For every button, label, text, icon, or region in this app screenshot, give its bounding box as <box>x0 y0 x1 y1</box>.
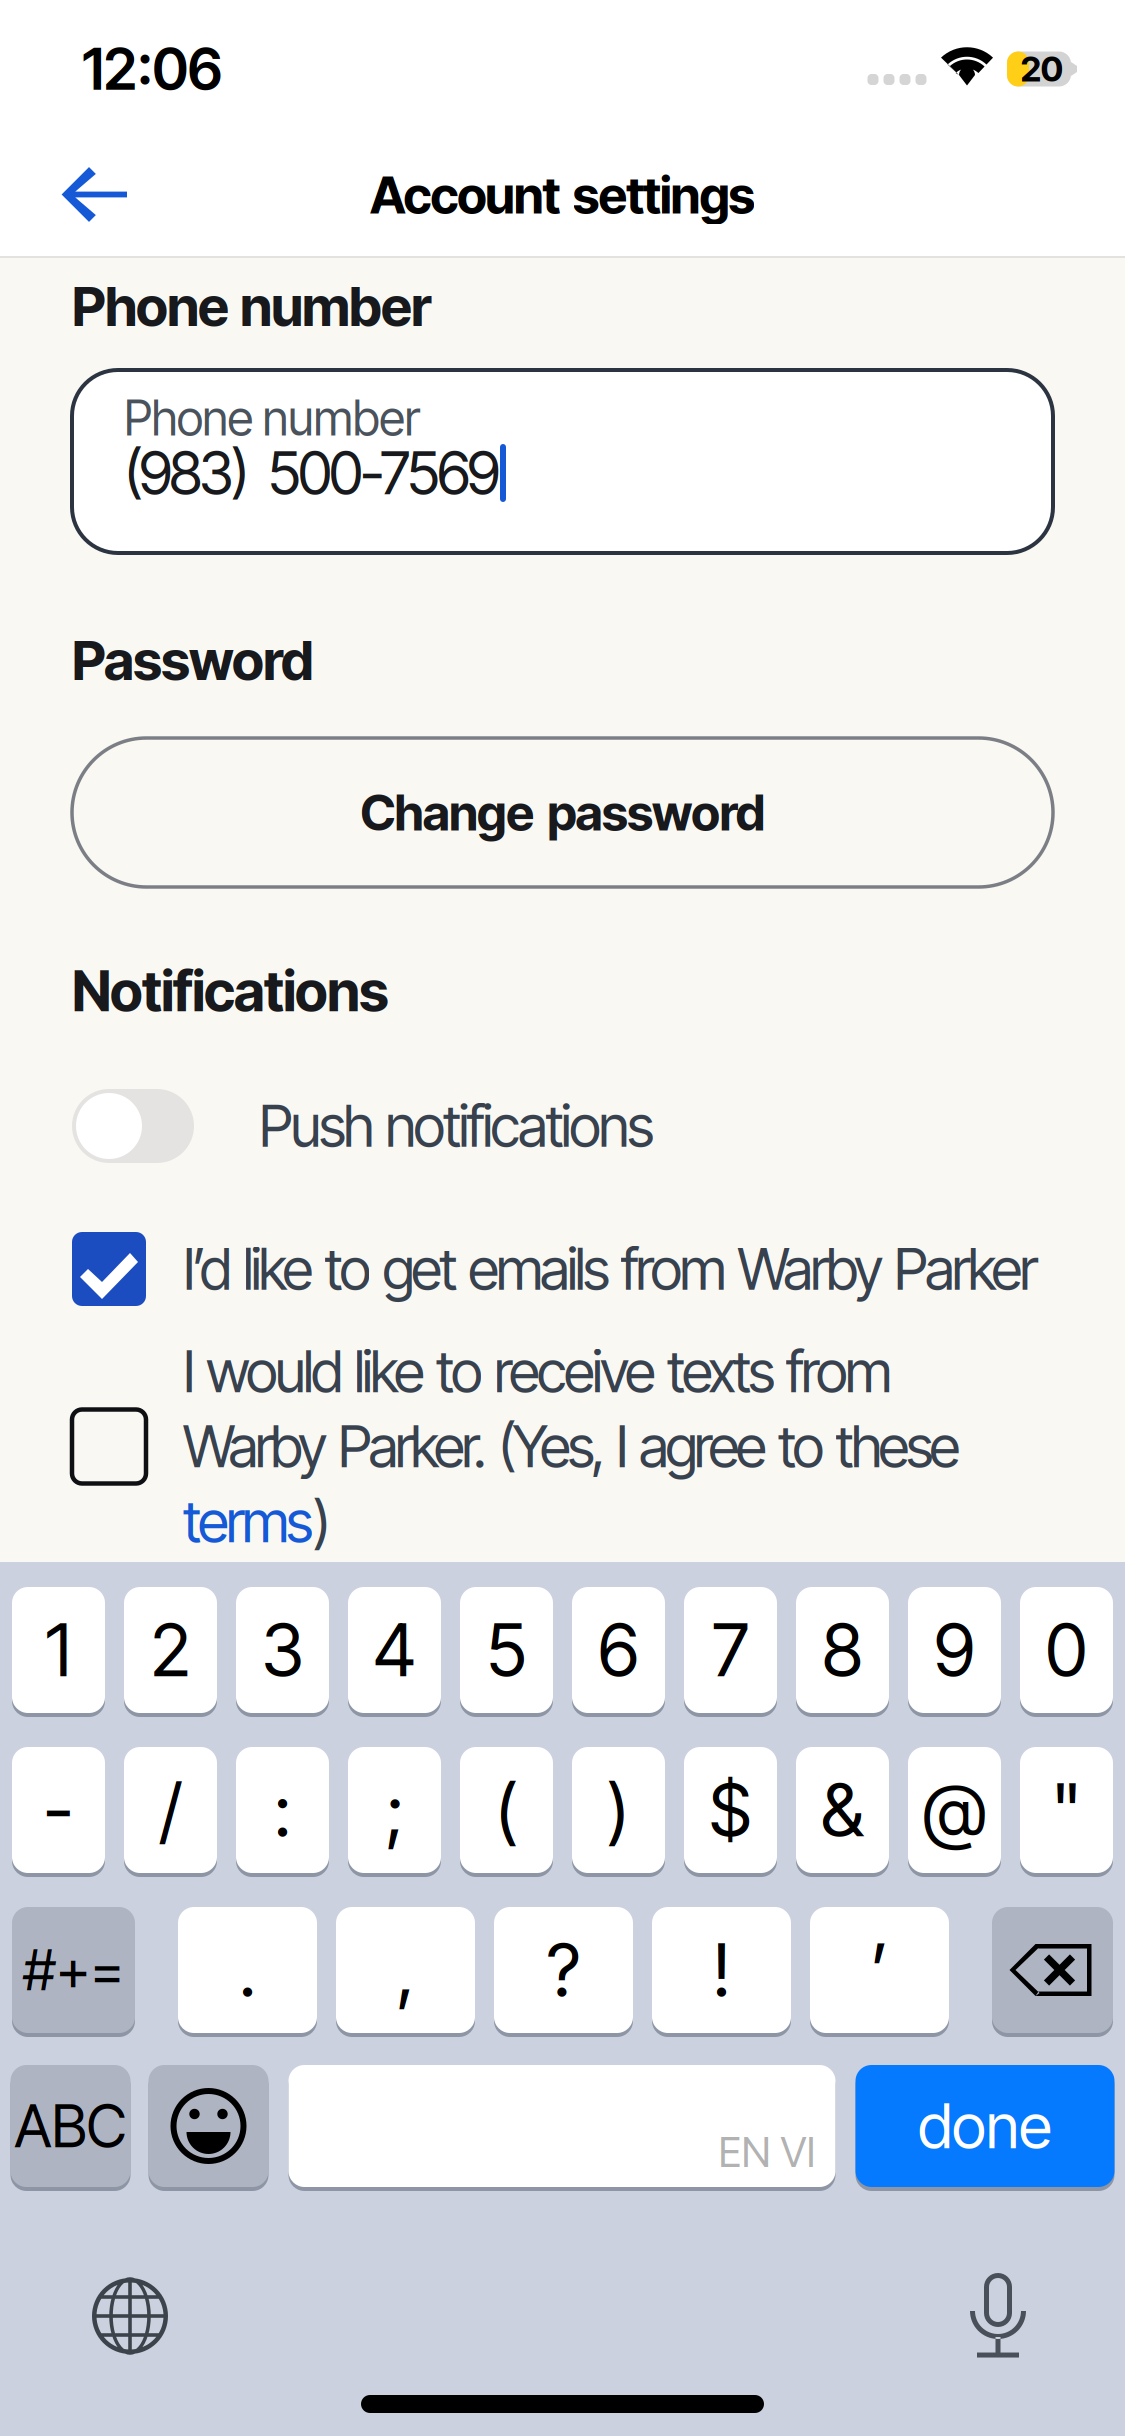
staticText: ) <box>313 1487 331 1556</box>
button[interactable]: ; <box>348 1747 441 1877</box>
staticText: I <box>616 1412 628 1481</box>
button[interactable]: ( <box>460 1747 553 1877</box>
staticText: ; <box>385 1766 403 1853</box>
button[interactable]: " <box>1020 1747 1113 1877</box>
button[interactable]: @ <box>908 1747 1001 1877</box>
button[interactable]: & <box>796 1747 889 1877</box>
button[interactable]: ) <box>572 1747 665 1877</box>
staticText: Change <box>360 783 534 842</box>
button[interactable]: ? <box>494 1907 633 2037</box>
staticText: (983) 500-7569 <box>124 437 500 508</box>
button[interactable]: space <box>288 2065 835 2191</box>
staticText: to <box>436 1337 483 1406</box>
staticText: 3 <box>261 1606 303 1693</box>
staticText: ! <box>712 1926 730 2013</box>
staticText: 7 <box>712 1606 749 1693</box>
staticText: 9 <box>934 1606 975 1693</box>
staticText: would <box>206 1337 343 1406</box>
staticText: Parker. <box>338 1412 487 1481</box>
button[interactable]: I’d <box>72 1232 1053 1306</box>
staticText: done <box>918 2089 1052 2163</box>
button[interactable]: 7 <box>684 1587 777 1717</box>
staticText: I <box>183 1337 195 1406</box>
staticText: " <box>1051 1766 1081 1853</box>
staticText: texts <box>667 1337 775 1406</box>
staticText: #+= <box>23 1936 124 2004</box>
staticText: , <box>396 1926 414 2013</box>
staticText: 12:06 <box>82 34 223 104</box>
button[interactable]: I <box>72 1334 1053 1559</box>
staticText: Account <box>370 164 561 226</box>
button[interactable]: 0 <box>1020 1587 1113 1717</box>
button[interactable]: done <box>855 2065 1114 2191</box>
staticText: - <box>43 1766 73 1853</box>
staticText: Warby <box>737 1234 883 1304</box>
button[interactable]: 4 <box>348 1587 441 1717</box>
staticText: agree <box>639 1412 767 1481</box>
button[interactable]: 9 <box>908 1587 1001 1717</box>
button[interactable]: . <box>178 1907 317 2037</box>
button[interactable]: 6 <box>572 1587 665 1717</box>
staticText: from <box>786 1337 892 1406</box>
button[interactable]: Dictation <box>953 2257 1043 2373</box>
button[interactable]: Push <box>72 1089 1053 1163</box>
staticText: EN VI <box>718 2127 815 2177</box>
staticText: : <box>274 1766 291 1853</box>
button[interactable]: 1 <box>12 1587 105 1717</box>
button[interactable]: $ <box>684 1747 777 1877</box>
button[interactable]: Delete <box>992 1907 1113 2037</box>
button[interactable]: 8 <box>796 1587 889 1717</box>
button[interactable]: ’ <box>810 1907 949 2037</box>
button[interactable]: - <box>12 1747 105 1877</box>
staticText: Notifications <box>72 957 389 1025</box>
staticText: I’d <box>183 1234 232 1304</box>
button[interactable]: Next keyboard <box>74 2260 182 2370</box>
staticText: emails <box>468 1234 610 1304</box>
staticText: / <box>159 1766 181 1853</box>
staticText: ’ <box>870 1926 888 2013</box>
staticText: 5 <box>486 1606 526 1693</box>
staticText: notifications <box>385 1091 654 1161</box>
staticText: 2 <box>150 1606 190 1693</box>
button[interactable]: 2 <box>124 1587 217 1717</box>
button[interactable]: : <box>236 1747 329 1877</box>
staticText: Warby <box>183 1412 327 1481</box>
staticText: ABC <box>14 2090 126 2161</box>
staticText: get <box>382 1234 457 1304</box>
staticText: Parker <box>894 1234 1038 1304</box>
staticText: Phone <box>124 389 254 447</box>
button[interactable]: Emoji <box>148 2065 268 2191</box>
staticText: . <box>239 1926 256 2013</box>
staticText: number <box>240 273 432 339</box>
button[interactable]: Back <box>0 132 185 257</box>
staticText: 4 <box>373 1606 416 1693</box>
button[interactable]: ABC <box>10 2065 130 2191</box>
staticText: to <box>324 1234 371 1304</box>
button[interactable]: 3 <box>236 1587 329 1717</box>
staticText: 1 <box>45 1606 71 1693</box>
button[interactable]: Change <box>72 738 1053 887</box>
button[interactable]: #+= <box>12 1907 135 2037</box>
staticText: $ <box>709 1766 752 1853</box>
staticText: to <box>778 1412 824 1481</box>
staticText: Phone <box>72 273 229 339</box>
staticText: password <box>547 783 765 842</box>
button[interactable]: ! <box>652 1907 791 2037</box>
staticText: 8 <box>822 1606 863 1693</box>
staticText: & <box>821 1766 864 1853</box>
staticText: Password <box>72 627 314 693</box>
staticText: 20 <box>1020 48 1063 90</box>
staticText: settings <box>573 164 755 226</box>
button[interactable]: 5 <box>460 1587 553 1717</box>
staticText: (Yes, <box>498 1412 605 1481</box>
staticText: ( <box>495 1766 518 1853</box>
staticText: like <box>243 1234 313 1304</box>
staticText: number <box>263 389 421 447</box>
staticText: 0 <box>1045 1606 1087 1693</box>
staticText: terms <box>183 1487 313 1556</box>
button[interactable]: , <box>336 1907 475 2037</box>
staticText: from <box>621 1234 726 1304</box>
button[interactable]: / <box>124 1747 217 1877</box>
staticText: @ <box>922 1766 986 1853</box>
staticText: these <box>835 1412 960 1481</box>
